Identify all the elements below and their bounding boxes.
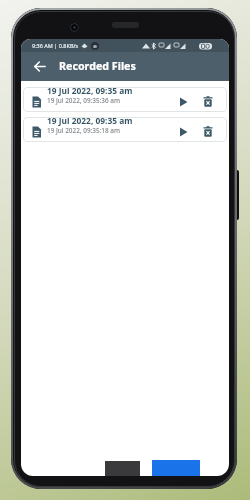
button[interactable]: 19 Jul 2022, 09:35 am [23, 87, 227, 112]
button[interactable] [179, 97, 188, 107]
button[interactable] [31, 96, 42, 108]
staticText: 19 Jul 2022, 09:35:18 am [47, 126, 121, 135]
staticText: 19 Jul 2022, 09:35:36 am [47, 96, 121, 105]
button[interactable]: 19 Jul 2022, 09:35 am [23, 117, 227, 142]
button[interactable] [203, 126, 213, 137]
button[interactable] [203, 96, 213, 107]
staticText: 9:36 AM | 0.8KB/s [32, 42, 79, 49]
staticText: 19 Jul 2022, 09:35 am [47, 117, 133, 126]
staticText: 19 Jul 2022, 09:35 am [47, 87, 133, 96]
button[interactable] [179, 127, 188, 137]
button[interactable] [31, 126, 42, 138]
button[interactable] [21, 52, 58, 81]
staticText: Recorded Files [59, 59, 136, 74]
